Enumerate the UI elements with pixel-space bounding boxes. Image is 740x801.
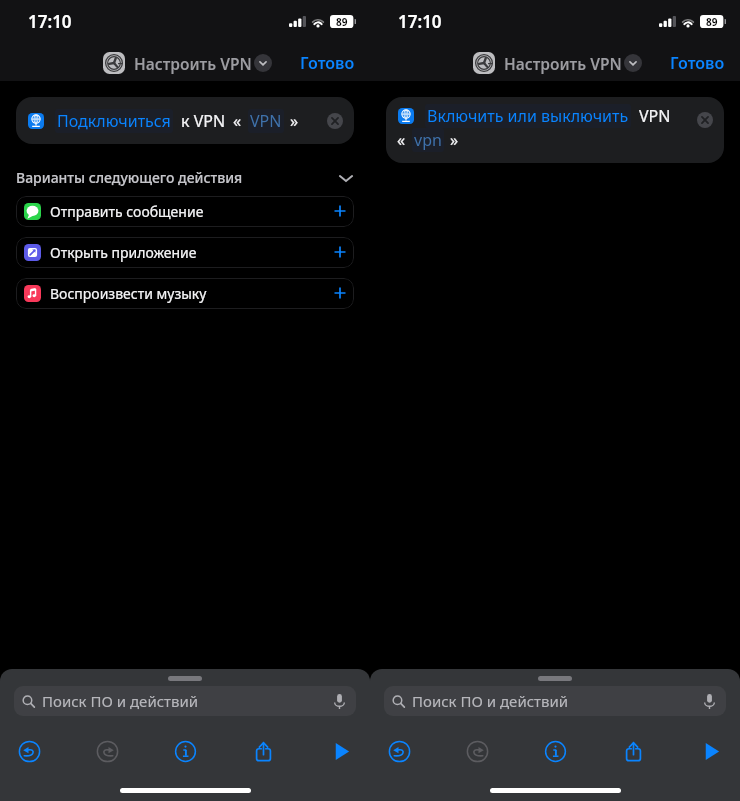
staticText: « <box>397 129 406 151</box>
button[interactable]: Add Отправить сообщение <box>325 196 354 227</box>
button[interactable]: Подключиться <box>16 97 354 144</box>
staticText: VPN <box>250 110 282 132</box>
button[interactable]: Add Открыть приложение <box>325 237 354 268</box>
button[interactable]: Поиск ПО и действий <box>14 686 356 716</box>
button[interactable]: Share <box>247 735 279 767</box>
staticText: 89 <box>706 15 718 28</box>
staticText: » <box>290 110 299 132</box>
button[interactable]: Поиск ПО и действий <box>384 686 726 716</box>
button[interactable]: Add Воспроизвести музыку <box>325 278 354 309</box>
button[interactable]: Открыть приложение <box>16 237 354 268</box>
button[interactable]: Play <box>325 735 357 767</box>
button[interactable]: More options <box>624 54 642 72</box>
button[interactable]: Redo <box>91 735 123 767</box>
button[interactable]: Redo <box>461 735 493 767</box>
staticText: Воспроизвести музыку <box>50 284 207 303</box>
staticText: « <box>233 110 242 132</box>
button[interactable]: More options <box>254 54 272 72</box>
button[interactable]: Undo <box>383 735 415 767</box>
staticText: к VPN <box>181 110 226 132</box>
button[interactable]: Info <box>169 735 201 767</box>
button[interactable]: Включить или выключить <box>386 97 724 163</box>
staticText: Настроить VPN <box>504 53 622 74</box>
staticText: Поиск ПО и действий <box>42 691 199 711</box>
button[interactable]: Undo <box>13 735 45 767</box>
staticText: » <box>450 129 459 151</box>
staticText: VPN <box>639 105 671 127</box>
staticText: 89 <box>336 15 348 28</box>
staticText: Готово <box>670 52 725 74</box>
staticText: Поиск ПО и действий <box>412 691 569 711</box>
staticText: Настроить VPN <box>134 53 252 74</box>
button[interactable]: Play <box>695 735 727 767</box>
button[interactable]: Воспроизвести музыку <box>16 278 354 309</box>
staticText: Готово <box>300 52 355 74</box>
button[interactable]: Отправить сообщение <box>16 196 354 227</box>
staticText: 17:10 <box>398 10 442 33</box>
button[interactable]: Share <box>617 735 649 767</box>
staticText: Включить или выключить <box>427 105 629 127</box>
staticText: vpn <box>414 129 442 151</box>
staticText: 17:10 <box>28 10 72 33</box>
button[interactable]: Готово <box>662 48 733 78</box>
staticText: Варианты следующего действия <box>16 168 243 187</box>
button[interactable]: Готово <box>292 48 363 78</box>
button[interactable]: Remove action <box>327 113 343 129</box>
staticText: Подключиться <box>57 110 171 132</box>
button[interactable]: Варианты следующего действия <box>16 168 354 187</box>
button[interactable]: Remove action <box>697 112 713 128</box>
button[interactable]: Info <box>539 735 571 767</box>
staticText: Отправить сообщение <box>50 202 204 221</box>
staticText: Открыть приложение <box>50 243 197 262</box>
